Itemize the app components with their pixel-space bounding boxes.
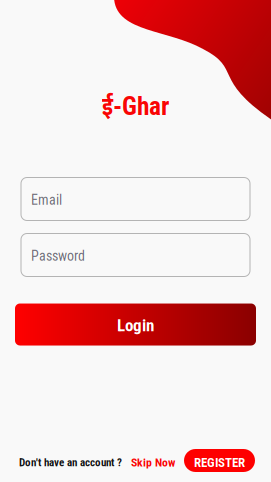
- staticText: ई-Ghar: [102, 88, 169, 122]
- staticText: Password: [31, 248, 85, 264]
- staticText: Don't have an account ?: [19, 456, 122, 469]
- staticText: Skip Now: [131, 456, 175, 469]
- staticText: REGISTER: [194, 455, 245, 470]
- staticText: Email: [31, 192, 62, 208]
- button[interactable]: Skip Now: [131, 454, 175, 467]
- staticText: Login: [117, 315, 154, 335]
- button[interactable]: Login: [15, 303, 256, 345]
- button[interactable]: REGISTER: [184, 449, 255, 472]
